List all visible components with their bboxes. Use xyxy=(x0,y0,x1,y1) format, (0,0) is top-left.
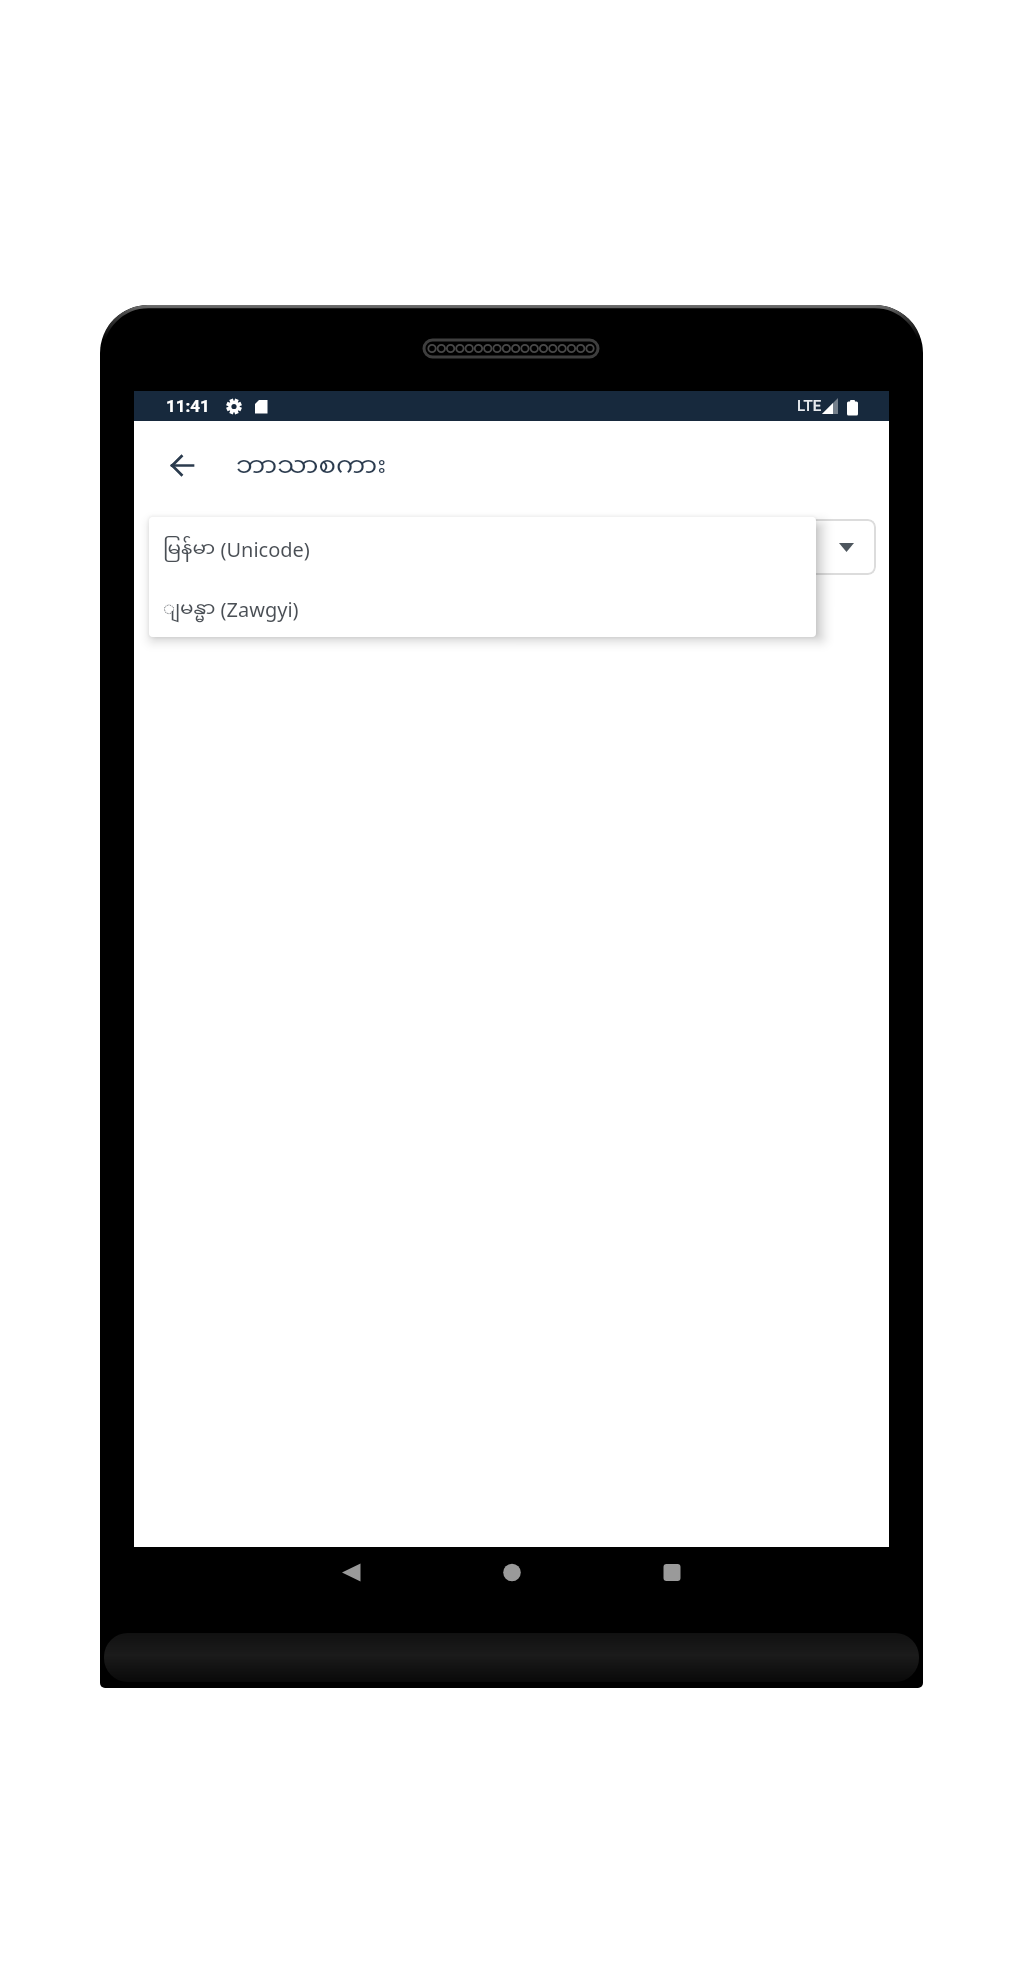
staticText: LTE xyxy=(797,397,822,415)
button[interactable]: ျမန္မာ (Zawgyi) xyxy=(149,581,816,637)
staticText: မြန်မာ (Unicode) xyxy=(163,536,310,563)
button[interactable]: မြန်မာ (Unicode) xyxy=(149,519,816,579)
button[interactable] xyxy=(149,519,876,575)
button[interactable] xyxy=(583,1547,673,1595)
staticText: 11:41 xyxy=(166,396,210,416)
staticText: ျမန္မာ (Zawgyi) xyxy=(163,596,299,623)
staticText: ဘာသာစကား xyxy=(236,449,387,484)
button[interactable] xyxy=(158,442,206,490)
button[interactable] xyxy=(433,1547,523,1595)
button[interactable] xyxy=(285,1547,375,1595)
